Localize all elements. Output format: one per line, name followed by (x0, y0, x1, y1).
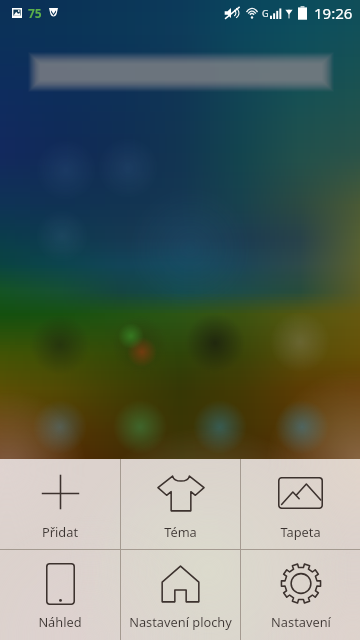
staticText: 75 (28, 5, 42, 21)
button[interactable]: Téma (121, 459, 240, 549)
staticText: Přidat (42, 523, 78, 540)
staticText: Náhled (38, 613, 82, 630)
staticText: Tapeta (280, 523, 321, 540)
staticText: G (262, 7, 269, 19)
staticText: Nastavení (271, 613, 331, 630)
staticText: 19:26 (314, 3, 353, 23)
staticText: Nastavení plochy (129, 613, 232, 630)
staticText: Téma (164, 523, 197, 540)
button[interactable]: Tapeta (241, 459, 360, 549)
button[interactable]: Přidat (0, 459, 120, 549)
button[interactable]: Nastavení plochy (121, 550, 240, 640)
button[interactable]: Nastavení (241, 550, 360, 640)
button[interactable]: Náhled (0, 550, 120, 640)
